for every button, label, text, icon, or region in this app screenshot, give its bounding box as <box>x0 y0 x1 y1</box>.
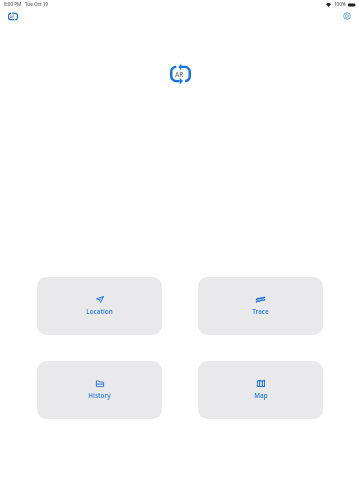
button[interactable]: Map <box>198 361 323 419</box>
button[interactable]: Trace <box>198 277 323 335</box>
button[interactable]: Reset AR session <box>3 6 23 26</box>
staticText: Location <box>86 307 113 316</box>
staticText: Tue Oct 19 <box>25 1 48 8</box>
staticText: History <box>88 391 111 400</box>
staticText: 100% <box>334 1 346 8</box>
staticText: AR <box>10 15 15 19</box>
staticText: AR <box>175 70 184 79</box>
button[interactable]: History <box>37 361 162 419</box>
staticText: Map <box>254 391 268 400</box>
staticText: Trace <box>252 307 269 316</box>
button[interactable]: Location <box>37 277 162 335</box>
staticText: 8:00 PM <box>4 1 22 8</box>
button[interactable]: Settings <box>337 6 357 26</box>
